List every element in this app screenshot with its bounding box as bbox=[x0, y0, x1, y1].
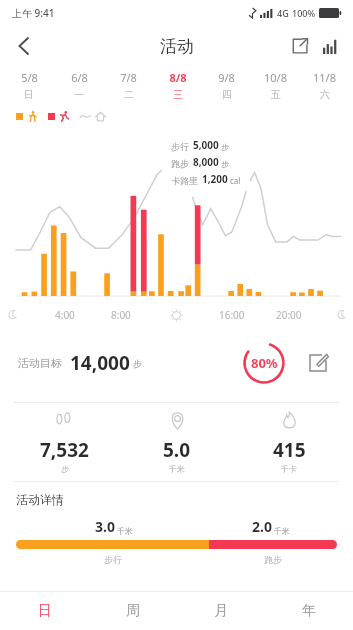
staticText: 年 bbox=[302, 602, 316, 620]
staticText: 8,000 bbox=[193, 155, 219, 169]
staticText: 8:00 bbox=[111, 308, 131, 322]
button[interactable]: 8/8 bbox=[153, 70, 202, 101]
staticText: 二 bbox=[124, 88, 134, 101]
button[interactable]: Statistics bbox=[315, 31, 345, 61]
button[interactable]: 9/8 bbox=[202, 70, 251, 101]
staticText: 11/8 bbox=[313, 70, 336, 85]
button[interactable]: 年 bbox=[265, 592, 353, 630]
staticText: 步行 bbox=[171, 141, 189, 152]
button[interactable]: 11/8 bbox=[300, 70, 349, 101]
staticText: 六 bbox=[320, 88, 330, 101]
button[interactable]: 5/8 bbox=[4, 70, 54, 101]
staticText: 千米 bbox=[117, 526, 133, 536]
button[interactable]: Back bbox=[6, 29, 40, 63]
button[interactable]: 月 bbox=[177, 592, 265, 630]
staticText: 活动目标 bbox=[18, 356, 62, 370]
button[interactable]: Share bbox=[285, 31, 315, 61]
button[interactable]: 7,532 bbox=[8, 403, 121, 481]
staticText: 千米 bbox=[169, 464, 185, 474]
staticText: 月 bbox=[214, 602, 228, 620]
staticText: 20:00 bbox=[276, 308, 302, 322]
staticText: 卡路里 bbox=[171, 175, 198, 186]
staticText: 10/8 bbox=[264, 70, 287, 85]
staticText: 活动详情 bbox=[16, 492, 64, 507]
button[interactable]: 415 bbox=[233, 403, 345, 481]
staticText: 周 bbox=[126, 602, 140, 620]
staticText: 7,532 bbox=[40, 437, 89, 463]
staticText: 80% bbox=[251, 354, 278, 372]
staticText: 步行 bbox=[104, 554, 122, 565]
staticText: 5,000 bbox=[193, 138, 219, 152]
staticText: 跑步 bbox=[264, 554, 282, 565]
button[interactable]: 7/8 bbox=[104, 70, 153, 101]
button[interactable]: 周 bbox=[89, 592, 177, 630]
staticText: 步 bbox=[61, 464, 69, 474]
staticText: 五 bbox=[271, 88, 281, 101]
staticText: 16:00 bbox=[219, 308, 245, 322]
staticText: 5.0 bbox=[163, 437, 191, 463]
staticText: 步 bbox=[221, 159, 229, 169]
button[interactable]: 6/8 bbox=[54, 70, 104, 101]
staticText: 9/8 bbox=[218, 70, 235, 85]
staticText: 6/8 bbox=[71, 70, 88, 85]
staticText: 4:00 bbox=[55, 308, 75, 322]
staticText: 5/8 bbox=[21, 70, 38, 85]
staticText: 2.0 bbox=[252, 517, 272, 536]
staticText: 步 bbox=[133, 358, 142, 369]
button[interactable]: 80% bbox=[241, 340, 287, 386]
staticText: 千卡 bbox=[281, 464, 297, 474]
staticText: 100% bbox=[292, 7, 316, 19]
staticText: 步 bbox=[221, 142, 229, 152]
staticText: 活动 bbox=[160, 36, 194, 57]
staticText: 千米 bbox=[274, 526, 290, 536]
button[interactable]: 10/8 bbox=[251, 70, 300, 101]
button[interactable]: 日 bbox=[0, 592, 89, 630]
staticText: 415 bbox=[273, 437, 306, 463]
staticText: cal bbox=[230, 175, 241, 186]
staticText: 一 bbox=[74, 88, 84, 101]
staticText: 跑步 bbox=[171, 158, 189, 169]
staticText: 4G bbox=[277, 7, 289, 19]
staticText: 8/8 bbox=[169, 70, 187, 85]
button[interactable]: Edit goal bbox=[301, 346, 335, 380]
button[interactable]: 5.0 bbox=[121, 403, 233, 481]
staticText: 7/8 bbox=[120, 70, 137, 85]
staticText: 日 bbox=[38, 602, 52, 620]
staticText: 三 bbox=[173, 88, 183, 101]
staticText: 四 bbox=[222, 88, 232, 101]
staticText: 3.0 bbox=[95, 517, 115, 536]
staticText: 上午 9:41 bbox=[12, 6, 55, 20]
staticText: 1,200 bbox=[202, 172, 228, 186]
staticText: 日 bbox=[24, 88, 34, 101]
staticText: 14,000 bbox=[70, 350, 130, 376]
